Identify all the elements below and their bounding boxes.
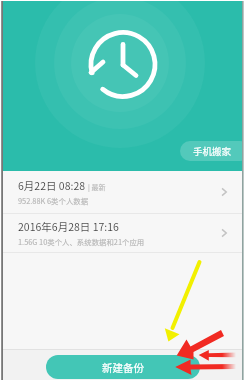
staticText: 新建备份 [102,360,144,375]
staticText: | 最新 [88,182,106,192]
button[interactable]: 2016年6月28日 17:16 [3,214,242,252]
staticText: 952.88K 6类个人数据 [18,195,89,206]
button[interactable]: 新建备份 [46,355,200,379]
staticText: 2016年6月28日 17:16 [18,219,119,234]
staticText: 手机搬家 [193,144,232,158]
staticText: 6月22日 08:28 [18,178,86,193]
staticText: 1.56G 10类个人、系统数据和21个应用 [18,236,145,247]
other: Open backup details [217,185,231,199]
other: Backup history [3,1,242,171]
button[interactable]: 手机搬家 [180,141,244,161]
other: Open backup details [217,226,231,240]
button[interactable]: 6月22日 08:28 [3,171,242,213]
